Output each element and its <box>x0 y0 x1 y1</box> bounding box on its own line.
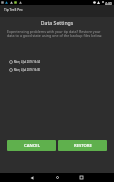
button[interactable]: RESTORE <box>58 140 107 151</box>
button[interactable]: Home <box>52 173 62 182</box>
staticText: RESTORE <box>74 143 92 149</box>
button[interactable]: Back <box>27 173 37 182</box>
button[interactable]: Mon, 4 Jul 2016 16:30 <box>0 66 114 74</box>
staticText: Experiencing problems with your tip data… <box>7 29 107 38</box>
staticText: Mon, 4 Jul 2016 16:30 <box>14 68 40 72</box>
staticText: Mon, 4 Jul 2016 16:34 <box>14 60 40 64</box>
staticText: Data Settings <box>0 19 114 26</box>
staticText: CANCEL <box>24 143 40 149</box>
button[interactable]: Mon, 4 Jul 2016 16:34 <box>0 58 114 66</box>
staticText: 4:40 <box>105 1 112 6</box>
button[interactable]: CANCEL <box>7 140 56 151</box>
button[interactable]: Recents <box>76 173 86 182</box>
staticText: Tip Tre$ Pro <box>4 7 23 11</box>
